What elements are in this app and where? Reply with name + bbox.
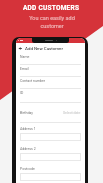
staticText: ADD CUSTOMERS: [23, 4, 80, 12]
staticText: Email: [20, 67, 29, 71]
button[interactable]: Name: [16, 53, 85, 65]
staticText: ID: [20, 91, 24, 95]
button[interactable]: Birthday: [16, 103, 85, 123]
button[interactable]: Address 1: [16, 123, 85, 143]
button[interactable]: Email: [16, 65, 85, 77]
button[interactable]: Back: [16, 43, 85, 53]
staticText: Birthday: [20, 111, 33, 115]
button[interactable]: Address 2: [16, 143, 85, 163]
staticText: You can easily add customer: [29, 15, 75, 29]
staticText: Postcode: [20, 167, 35, 171]
button[interactable]: Postcode: [16, 163, 85, 183]
other: Back: [18, 46, 23, 51]
staticText: Name: [20, 55, 30, 59]
staticText: Add New Customer: [25, 46, 63, 51]
staticText: Contact number: [20, 79, 46, 83]
staticText: Address 2: [20, 147, 36, 151]
staticText: Address 1: [20, 127, 36, 131]
button[interactable]: Contact number: [16, 77, 85, 89]
button[interactable]: ID: [16, 89, 85, 103]
staticText: Select date: [63, 111, 81, 115]
